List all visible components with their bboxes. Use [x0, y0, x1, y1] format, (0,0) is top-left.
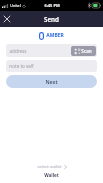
staticText: AMBER — [46, 32, 64, 39]
button[interactable]: select wallet — [0, 164, 103, 178]
button[interactable]: Close — [0, 12, 14, 26]
staticText: address — [9, 48, 27, 54]
button[interactable]: AMBER — [0, 31, 103, 40]
staticText: Scan — [81, 48, 92, 54]
staticText: Wallet — [44, 172, 59, 178]
button[interactable]: address — [6, 44, 97, 57]
staticText: Unitel — [10, 3, 21, 8]
button[interactable]: Scan — [71, 46, 96, 56]
button[interactable]: note to self — [6, 60, 97, 72]
staticText: select wallet — [37, 164, 62, 170]
staticText: 6:45 PM — [44, 3, 60, 8]
staticText: Next — [45, 78, 58, 85]
staticText: note to self — [9, 63, 34, 69]
button[interactable]: Next — [6, 75, 97, 88]
staticText: Send — [44, 15, 59, 23]
